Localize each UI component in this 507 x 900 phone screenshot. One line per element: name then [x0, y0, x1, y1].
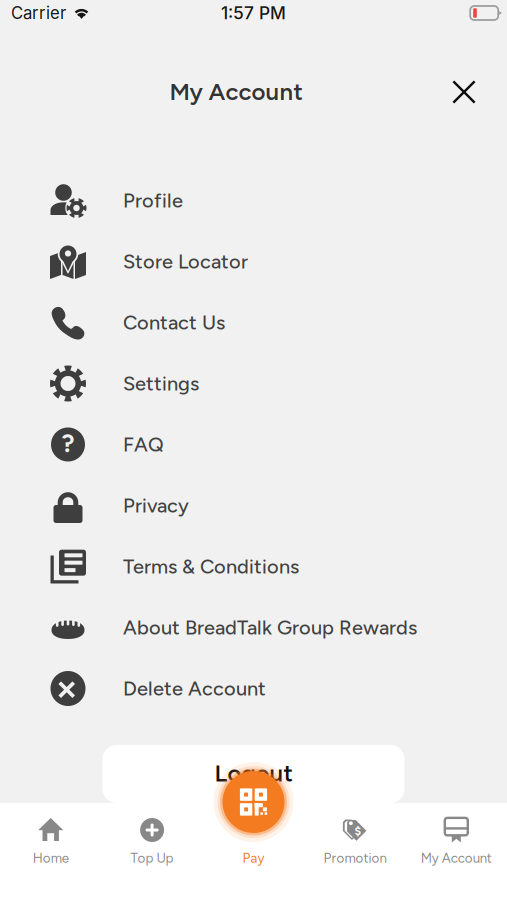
staticText: About BreadTalk Group Rewards [123, 615, 417, 639]
button[interactable]: Home [0, 803, 101, 900]
staticText: Top Up [131, 850, 174, 866]
button[interactable]: Delete Account [0, 658, 507, 719]
staticText: 1:57 PM [221, 2, 286, 23]
staticText: Carrier [11, 3, 66, 23]
button[interactable]: Top Up [101, 803, 203, 900]
button[interactable]: Terms & Conditions [0, 536, 507, 597]
button[interactable]: $ [304, 803, 406, 900]
staticText: FAQ [123, 432, 164, 456]
button[interactable]: About BreadTalk Group Rewards [0, 597, 507, 658]
button[interactable]: Privacy [0, 475, 507, 536]
button[interactable]: My Account [406, 803, 507, 900]
staticText: Home [33, 850, 69, 866]
staticText: $ [355, 824, 362, 838]
staticText: Promotion [323, 850, 386, 866]
button[interactable]: Profile [0, 170, 507, 231]
button[interactable]: ? [0, 414, 507, 475]
button[interactable]: Pay [212, 761, 294, 843]
staticText: Privacy [123, 493, 189, 517]
button[interactable]: Pay [203, 803, 304, 900]
staticText: Delete Account [123, 676, 266, 700]
staticText: Settings [123, 371, 199, 395]
button[interactable]: Contact Us [0, 292, 507, 353]
staticText: My Account [421, 850, 492, 866]
staticText: Contact Us [123, 310, 225, 334]
staticText: Profile [123, 188, 183, 212]
button[interactable]: Settings [0, 353, 507, 414]
staticText: Logout [214, 759, 292, 787]
staticText: ? [61, 428, 74, 459]
button[interactable]: Store Locator [0, 231, 507, 292]
staticText: Pay [242, 850, 264, 866]
staticText: Terms & Conditions [123, 554, 299, 578]
staticText: Store Locator [123, 249, 248, 273]
staticText: My Account [169, 77, 302, 106]
button[interactable]: Close [441, 69, 487, 115]
